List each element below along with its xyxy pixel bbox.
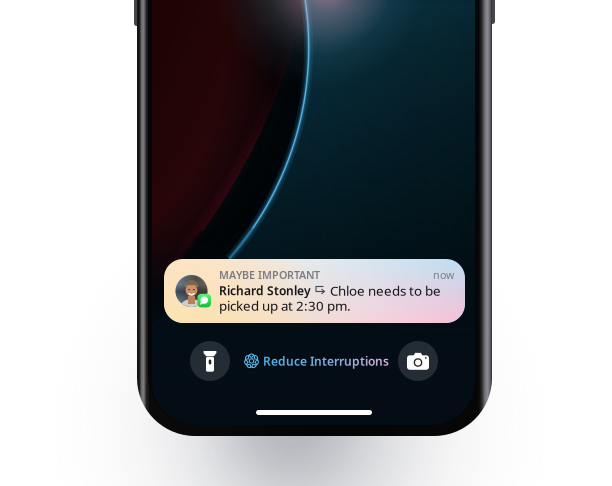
staticText: picked up at 2:30 pm.: [219, 297, 351, 314]
button[interactable]: Flashlight: [190, 341, 230, 381]
button[interactable]: MAYBE IMPORTANT: [164, 259, 465, 323]
staticText: now: [433, 268, 454, 282]
button[interactable]: Camera: [398, 341, 438, 381]
staticText: Chloe needs to be: [330, 282, 441, 299]
staticText: Richard Stonley: [219, 282, 311, 298]
button[interactable]: [244, 351, 392, 371]
staticText: MAYBE IMPORTANT: [219, 268, 320, 282]
